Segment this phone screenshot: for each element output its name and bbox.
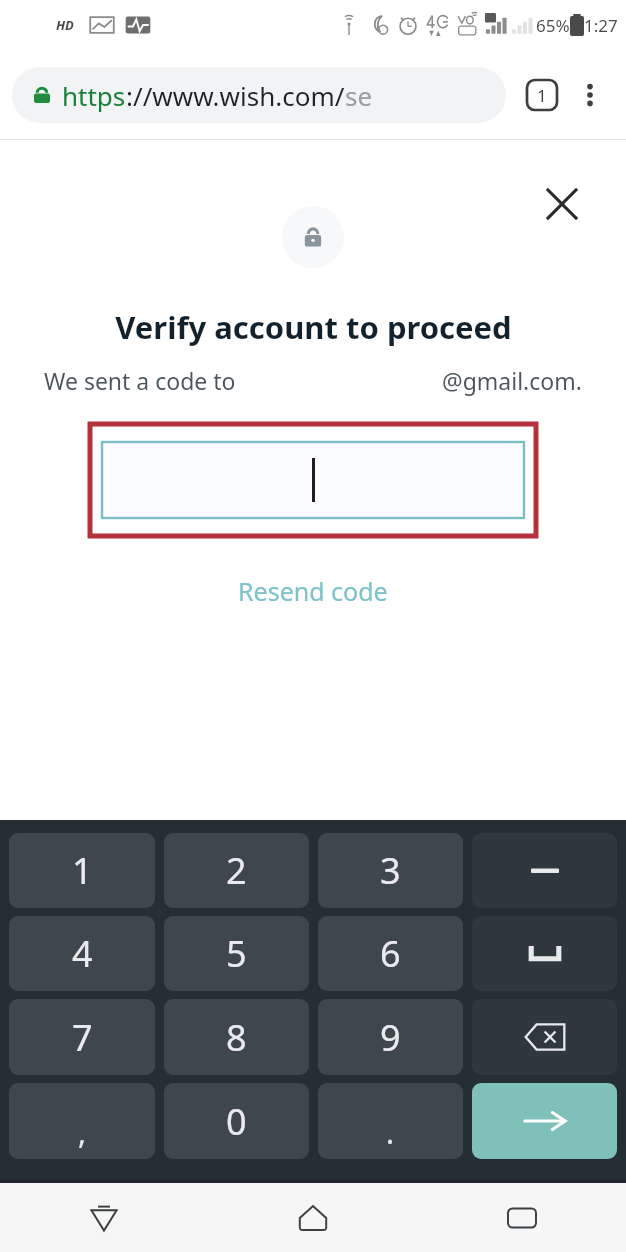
staticText: 65% bbox=[536, 14, 570, 37]
button[interactable]: Backspace bbox=[472, 999, 617, 1075]
button[interactable]: Resend code bbox=[222, 568, 404, 614]
button[interactable]: 4 bbox=[9, 916, 155, 991]
button[interactable]: https bbox=[12, 67, 506, 123]
staticText: 5 bbox=[226, 929, 247, 978]
staticText: https bbox=[62, 78, 126, 113]
button[interactable]: 7 bbox=[9, 999, 155, 1075]
staticText: ://www.wish.com/ bbox=[126, 78, 345, 113]
staticText: se bbox=[345, 78, 373, 113]
button[interactable]: Close bbox=[540, 182, 584, 226]
staticText: Resend code bbox=[238, 574, 388, 608]
staticText: 2 bbox=[226, 846, 247, 895]
button[interactable]: Recent apps bbox=[417, 1183, 626, 1252]
button[interactable]: Space bbox=[472, 916, 617, 991]
button[interactable]: 2 bbox=[164, 833, 309, 908]
staticText: HD bbox=[56, 16, 74, 34]
staticText: 3 bbox=[380, 846, 401, 895]
button[interactable]: Home bbox=[208, 1183, 417, 1252]
button[interactable]: More options bbox=[566, 71, 614, 119]
staticText: Verify account to proceed bbox=[115, 306, 512, 348]
button[interactable]: 8 bbox=[164, 999, 309, 1075]
staticText: 9 bbox=[380, 1013, 401, 1062]
staticText: @gmail.com. bbox=[442, 365, 582, 396]
button[interactable]: 3 bbox=[318, 833, 463, 908]
button[interactable]: Back bbox=[0, 1183, 208, 1252]
staticText: , bbox=[78, 1112, 87, 1153]
staticText: 1:27 bbox=[584, 14, 618, 37]
staticText: 1 bbox=[537, 84, 547, 107]
button[interactable]: Enter bbox=[472, 1083, 617, 1159]
staticText: 7 bbox=[72, 1013, 93, 1062]
staticText: 6 bbox=[380, 929, 401, 978]
button[interactable]: Tabs, 1 open bbox=[518, 71, 566, 119]
staticText: We sent a code to bbox=[44, 365, 236, 396]
button[interactable]: 1 bbox=[9, 833, 155, 908]
button[interactable]: 9 bbox=[318, 999, 463, 1075]
button[interactable]: Minus bbox=[472, 833, 617, 908]
button[interactable]: 5 bbox=[164, 916, 309, 991]
button[interactable]: . bbox=[318, 1083, 463, 1159]
staticText: 1 bbox=[72, 846, 93, 895]
button[interactable]: 0 bbox=[164, 1083, 309, 1159]
staticText: . bbox=[386, 1112, 395, 1153]
staticText: 8 bbox=[226, 1013, 247, 1062]
staticText: 4 bbox=[72, 929, 93, 978]
button[interactable]: 6 bbox=[318, 916, 463, 991]
button[interactable] bbox=[102, 442, 524, 518]
staticText: 0 bbox=[226, 1097, 247, 1146]
button[interactable]: , bbox=[9, 1083, 155, 1159]
